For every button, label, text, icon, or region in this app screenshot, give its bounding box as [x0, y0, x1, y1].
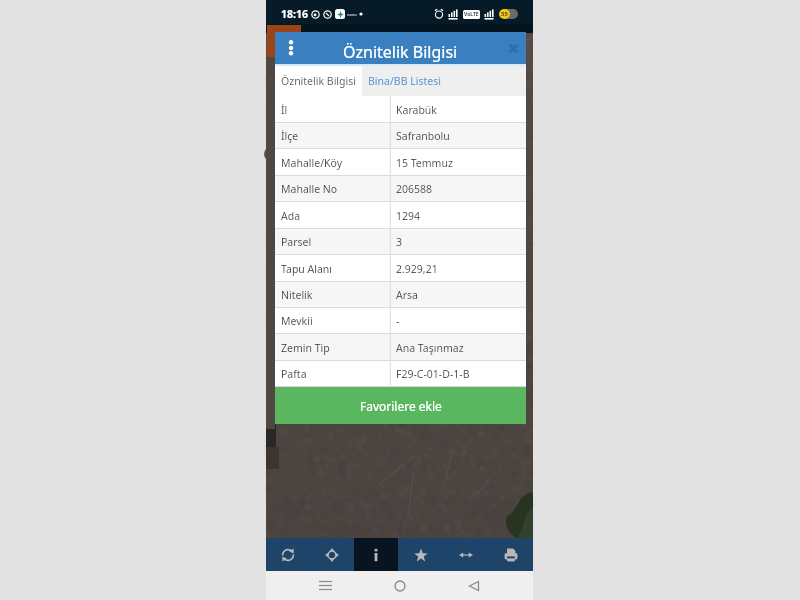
staticText: -	[396, 314, 400, 328]
button[interactable]: Favorites	[398, 538, 443, 571]
staticText: 18:16	[281, 7, 308, 21]
staticText: Mahalle No	[281, 182, 338, 196]
staticText: Karabük	[396, 103, 437, 117]
button[interactable]: Favorilere ekle	[275, 387, 526, 424]
staticText: 3	[396, 235, 403, 249]
staticText: Tapu Alanı	[281, 262, 333, 276]
staticText: Öznitelik Bilgisi	[343, 41, 458, 63]
staticText: Ada	[281, 209, 301, 223]
button[interactable]: Close	[500, 32, 526, 64]
staticText: Ana Taşınmaz	[396, 341, 464, 355]
staticText: 15 Temmuz	[396, 156, 453, 170]
button[interactable]: Info	[354, 538, 398, 571]
staticText: Pafta	[281, 367, 307, 381]
staticText: 2.929,21	[396, 262, 438, 276]
button[interactable]: Öznitelik Bilgisi	[275, 66, 362, 96]
button[interactable]: Back	[459, 571, 489, 600]
staticText: Arsa	[396, 288, 418, 302]
staticText: Nitelik	[281, 288, 313, 302]
staticText: 206588	[396, 182, 433, 196]
button[interactable]: Home	[385, 571, 415, 600]
staticText: Parsel	[281, 235, 312, 249]
staticText: Zemin Tip	[281, 341, 330, 355]
button[interactable]: Recents	[310, 571, 340, 600]
staticText: 1294	[396, 209, 421, 223]
staticText: Favorilere ekle	[360, 398, 442, 414]
button[interactable]: Locate	[310, 538, 354, 571]
button[interactable]: Print	[488, 538, 533, 571]
staticText: Öznitelik Bilgisi	[281, 74, 356, 88]
button[interactable]: Bina/BB Listesi	[362, 66, 526, 96]
button[interactable]: More options	[275, 32, 306, 64]
staticText: 55	[501, 10, 508, 18]
staticText: Bina/BB Listesi	[368, 74, 441, 88]
staticText: Mevkii	[281, 314, 313, 328]
staticText: Mahalle/Köy	[281, 156, 343, 170]
staticText: nano	[347, 12, 357, 17]
button[interactable]: Measure	[443, 538, 488, 571]
staticText: İl	[281, 103, 288, 117]
staticText: F29-C-01-D-1-B	[396, 367, 470, 381]
staticText: Safranbolu	[396, 129, 450, 143]
staticText: İlçe	[281, 129, 299, 143]
button[interactable]: Refresh	[266, 538, 310, 571]
staticText: VoLTE	[464, 11, 479, 18]
